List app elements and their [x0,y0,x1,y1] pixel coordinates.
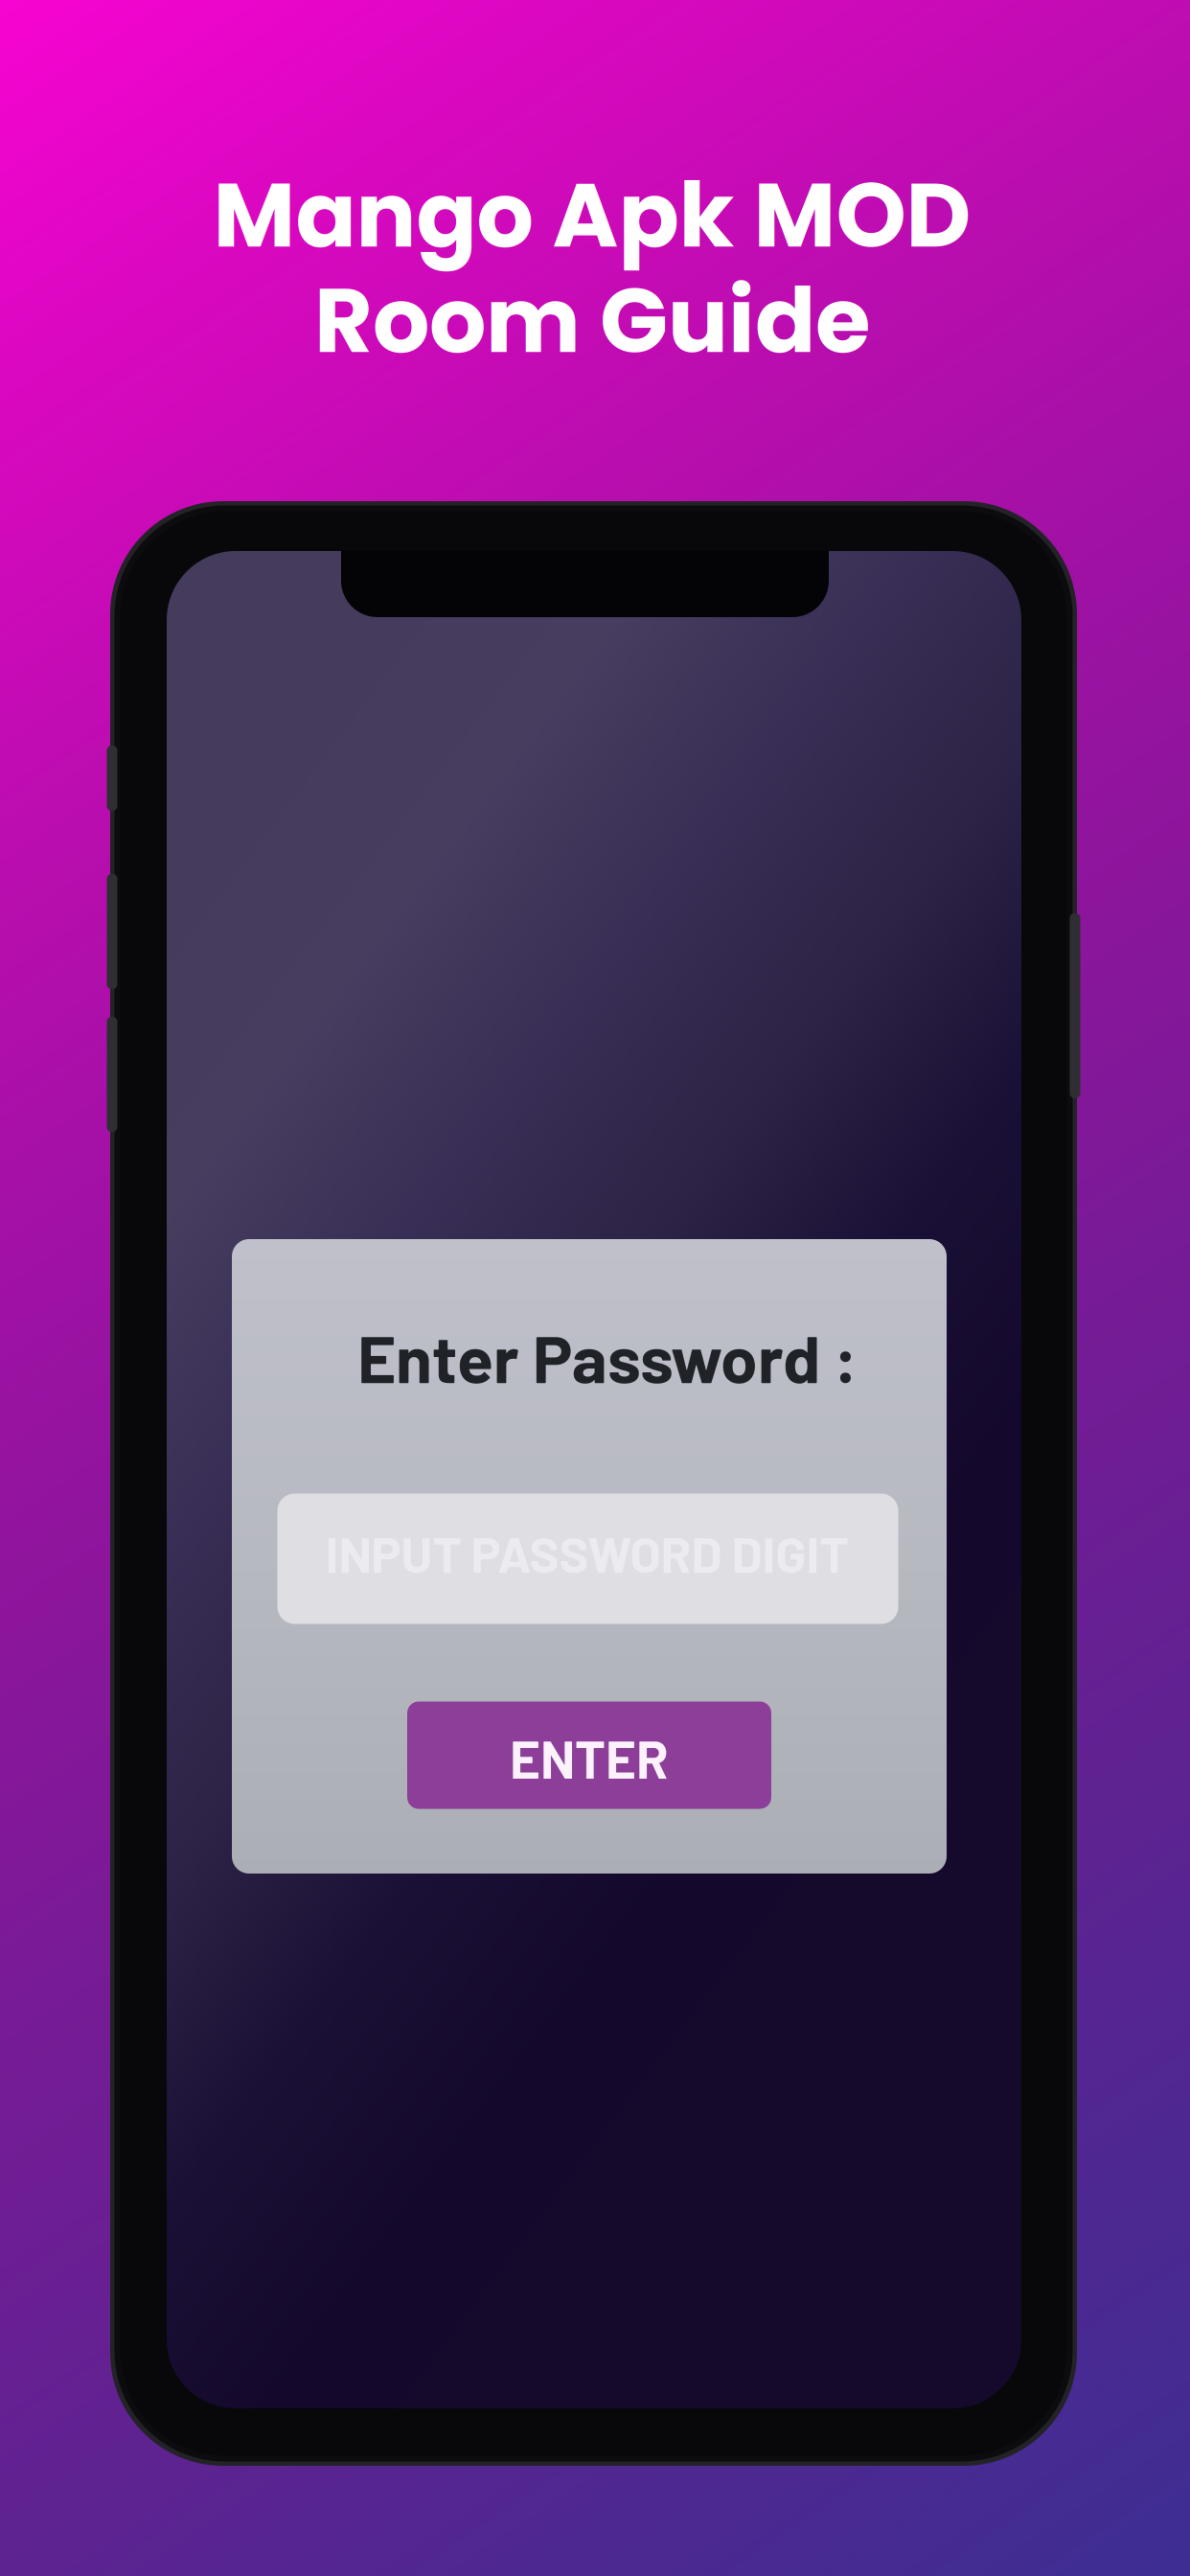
staticText: Room Guide [314,258,870,383]
staticText: INPUT PASSWORD DIGIT [325,1523,848,1583]
staticText: Mango Apk MOD [213,153,971,278]
staticText: Enter Password : [357,1317,858,1396]
staticText: ENTER [510,1727,669,1789]
button[interactable]: INPUT PASSWORD DIGIT [277,1494,898,1624]
button[interactable]: ENTER [407,1702,771,1809]
